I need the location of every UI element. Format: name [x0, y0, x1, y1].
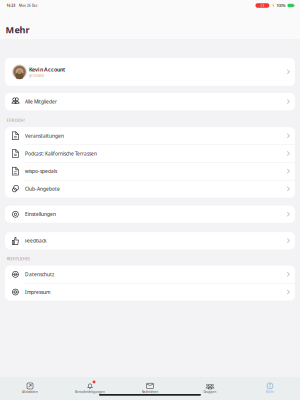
staticText: Aktivitäten — [22, 390, 38, 394]
button[interactable]: Kevin Account — [5, 58, 295, 86]
button[interactable]: Gruppen — [180, 382, 240, 394]
staticText: 23 — [260, 3, 264, 7]
staticText: 100% — [276, 3, 285, 8]
staticText: Benachrichtigungen — [75, 390, 105, 394]
staticText: @123456 — [29, 74, 44, 78]
staticText: Gruppen — [203, 390, 216, 394]
staticText: Mon 26 Dez — [19, 3, 37, 8]
button[interactable]: Feedback — [5, 232, 295, 249]
button[interactable]: Einstellungen — [5, 206, 295, 223]
staticText: Einstellungen — [25, 211, 56, 217]
staticText: Veranstaltungen — [25, 133, 64, 139]
button[interactable]: wispo-specials — [5, 163, 295, 180]
staticText: wispo-specials — [25, 168, 57, 174]
staticText: Podcast: Kalifornische Terrassen — [25, 150, 97, 157]
staticText: RECHTLICHES — [7, 256, 30, 261]
staticText: Mehr — [266, 390, 274, 394]
staticText: Mehr — [6, 24, 30, 36]
staticText: Feedback — [25, 237, 47, 244]
button[interactable]: Veranstaltungen — [5, 127, 295, 144]
staticText: Club-Angebote — [25, 186, 60, 192]
button[interactable]: Impressum — [5, 283, 295, 301]
staticText: 16:23 — [7, 3, 16, 8]
staticText: Alle Mitglieder — [25, 98, 57, 105]
button[interactable]: Alle Mitglieder — [5, 93, 295, 110]
button[interactable]: Mehr — [240, 382, 300, 394]
staticText: Datenschutz — [25, 271, 54, 278]
button[interactable]: Club-Angebote — [5, 180, 295, 198]
button[interactable]: Podcast: Kalifornische Terrassen — [5, 145, 295, 162]
button[interactable]: Aktivitäten — [0, 382, 60, 394]
staticText: Nachrichten — [141, 390, 158, 394]
button[interactable]: Benachrichtigungen — [60, 382, 120, 394]
staticText: Kevin Account — [29, 66, 65, 73]
button[interactable]: Nachrichten — [120, 382, 180, 394]
button[interactable]: Datenschutz — [5, 266, 295, 283]
staticText: FÜR DICH! — [7, 118, 25, 123]
staticText: Impressum — [25, 289, 50, 295]
